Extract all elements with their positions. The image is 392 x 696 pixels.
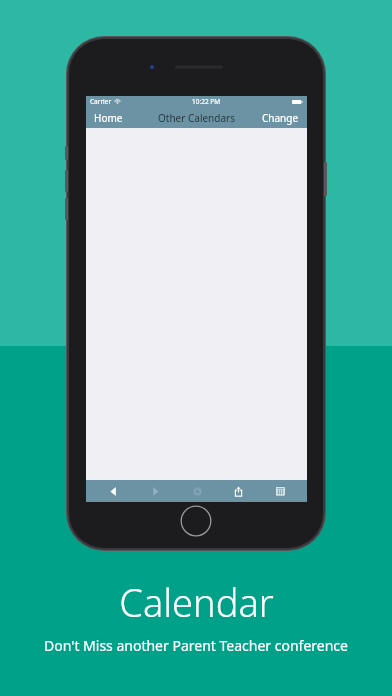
staticText: Change xyxy=(262,111,299,125)
button[interactable]: Change xyxy=(254,108,307,128)
button[interactable]: Forward xyxy=(140,480,170,502)
button[interactable]: Calendar xyxy=(265,480,295,502)
staticText: Don't Miss another Parent Teacher confer… xyxy=(44,636,348,655)
staticText: Calendar xyxy=(119,576,274,628)
button[interactable]: Back xyxy=(98,480,128,502)
button[interactable]: Loading xyxy=(182,480,212,502)
staticText: 10:22 PM xyxy=(192,97,221,106)
staticText: Other Calendars xyxy=(158,111,235,125)
button[interactable]: Home xyxy=(86,108,131,128)
button[interactable]: Share xyxy=(223,480,253,502)
staticText: Carrier xyxy=(90,97,112,106)
staticText: Home xyxy=(94,111,123,125)
button[interactable]: Home button xyxy=(180,505,212,537)
